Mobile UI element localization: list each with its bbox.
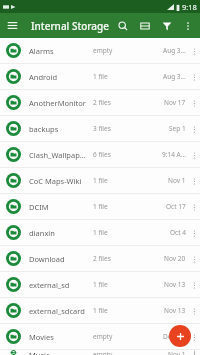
- button[interactable]: File options: [188, 91, 200, 115]
- button[interactable]: AnotherMonitor: [0, 90, 200, 115]
- staticText: 1 file: [93, 228, 131, 237]
- button[interactable]: Clash_Wallpapers: [0, 142, 200, 167]
- button[interactable]: dianxin: [0, 220, 200, 245]
- staticText: Movies: [29, 332, 89, 342]
- staticText: AnotherMonitor: [29, 98, 89, 108]
- staticText: Nov 20: [164, 254, 186, 263]
- staticText: Dec 2...: [163, 332, 186, 341]
- staticText: 1 file: [93, 202, 131, 211]
- staticText: Sep 1: [169, 124, 186, 133]
- button[interactable]: DCIM: [0, 194, 200, 219]
- button[interactable]: CoC Maps-Wiki: [0, 168, 200, 193]
- button[interactable]: File options: [188, 169, 200, 193]
- staticText: 2 files: [93, 98, 131, 107]
- button[interactable]: Android: [0, 64, 200, 89]
- button[interactable]: Change view: [134, 15, 156, 37]
- staticText: Oct 4: [170, 228, 186, 237]
- button[interactable]: external_sdcard: [0, 298, 200, 323]
- staticText: CoC Maps-Wiki: [29, 176, 89, 186]
- staticText: 1 file: [93, 306, 131, 315]
- button[interactable]: More options: [178, 16, 198, 36]
- staticText: Aug 3...: [163, 72, 186, 81]
- button[interactable]: Sort and filter: [156, 15, 178, 37]
- button[interactable]: File options: [188, 39, 200, 63]
- staticText: empty: [93, 332, 131, 341]
- button[interactable]: File options: [188, 143, 200, 167]
- button[interactable]: File options: [188, 273, 200, 297]
- button[interactable]: Search: [112, 15, 134, 37]
- staticText: Nov 13: [164, 306, 186, 315]
- staticText: external_sd: [29, 280, 89, 290]
- staticText: 9:18: [182, 2, 197, 12]
- button[interactable]: Open navigation drawer: [0, 13, 25, 38]
- button[interactable]: Music: [0, 350, 200, 355]
- staticText: Nov 1: [168, 176, 186, 185]
- staticText: Nov 1: [168, 350, 186, 355]
- staticText: external_sdcard: [29, 306, 89, 316]
- button[interactable]: File options: [188, 221, 200, 245]
- button[interactable]: File options: [188, 247, 200, 271]
- button[interactable]: File options: [188, 195, 200, 219]
- staticText: Android: [29, 72, 89, 82]
- button[interactable]: File options: [188, 299, 200, 323]
- button[interactable]: Create new: [169, 325, 191, 347]
- staticText: Alarms: [29, 46, 89, 56]
- button[interactable]: File options: [188, 325, 200, 349]
- button[interactable]: Alarms: [0, 38, 200, 63]
- staticText: Nov 17: [164, 98, 186, 107]
- button[interactable]: Download: [0, 246, 200, 271]
- button[interactable]: backups: [0, 116, 200, 141]
- staticText: dianxin: [29, 228, 89, 238]
- staticText: 1 file: [93, 72, 131, 81]
- button[interactable]: File options: [188, 65, 200, 89]
- staticText: 1 file: [93, 176, 131, 185]
- button[interactable]: Movies: [0, 324, 200, 349]
- staticText: Music: [29, 350, 89, 355]
- staticText: Internal Storage: [31, 19, 112, 33]
- staticText: 2 files: [93, 254, 131, 263]
- button[interactable]: external_sd: [0, 272, 200, 297]
- staticText: Clash_Wallpapers: [29, 150, 89, 160]
- staticText: Oct 17: [166, 202, 186, 211]
- staticText: 9:14 A...: [162, 150, 186, 159]
- staticText: Download: [29, 254, 89, 264]
- staticText: 1 file: [93, 280, 131, 289]
- staticText: empty: [93, 350, 131, 355]
- staticText: 6 files: [93, 150, 131, 159]
- staticText: Aug 3...: [163, 46, 186, 55]
- staticText: 3 files: [93, 124, 131, 133]
- button[interactable]: File options: [188, 117, 200, 141]
- staticText: empty: [93, 46, 131, 55]
- staticText: DCIM: [29, 202, 89, 212]
- staticText: backups: [29, 124, 89, 134]
- staticText: Nov 13: [164, 280, 186, 289]
- button[interactable]: File options: [188, 350, 200, 355]
